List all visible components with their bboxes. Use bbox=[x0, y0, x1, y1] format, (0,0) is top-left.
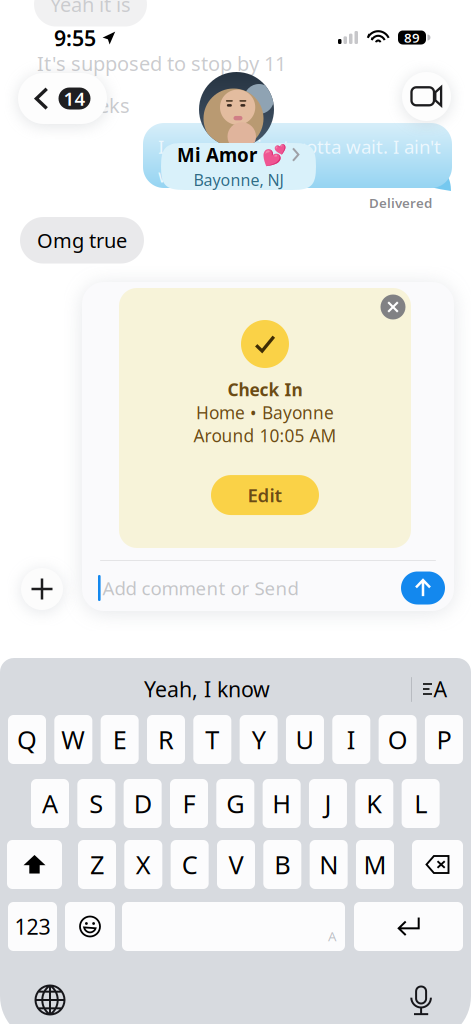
button[interactable]: Y bbox=[240, 715, 278, 764]
staticText: Bayonne, NJ bbox=[193, 169, 283, 190]
staticText: E bbox=[113, 723, 127, 756]
button[interactable]: O bbox=[379, 715, 417, 764]
staticText: R bbox=[158, 723, 174, 756]
staticText: 9:55 bbox=[54, 24, 96, 52]
staticText: K bbox=[366, 787, 382, 820]
staticText: H bbox=[272, 787, 291, 820]
button[interactable]: V bbox=[217, 840, 255, 889]
staticText: O bbox=[388, 723, 408, 756]
staticText: A bbox=[328, 927, 337, 945]
button[interactable]: X bbox=[124, 840, 162, 889]
staticText: 14 bbox=[63, 86, 85, 111]
staticText: Add comment or Send bbox=[103, 576, 299, 600]
staticText: Omg true bbox=[37, 227, 127, 254]
button[interactable]: 123 bbox=[8, 902, 57, 951]
staticText: Y bbox=[252, 723, 266, 756]
staticText: S bbox=[89, 787, 103, 820]
button[interactable]: Delete bbox=[412, 840, 463, 889]
staticText: B bbox=[274, 848, 290, 881]
button[interactable]: Shift bbox=[7, 840, 62, 889]
staticText: T bbox=[205, 723, 219, 756]
button[interactable]: D bbox=[124, 779, 162, 828]
staticText: Home • Bayonne bbox=[196, 401, 334, 424]
staticText: J bbox=[324, 787, 331, 820]
staticText: Q bbox=[17, 723, 37, 756]
button[interactable]: Emoji bbox=[65, 902, 115, 951]
staticText: U bbox=[295, 723, 314, 756]
staticText: N bbox=[319, 848, 338, 881]
button[interactable]: S bbox=[77, 779, 115, 828]
button[interactable]: Dictation bbox=[397, 976, 445, 1024]
button[interactable]: Yeah, I know bbox=[97, 669, 317, 709]
button[interactable]: M bbox=[356, 840, 394, 889]
button[interactable]: Close bbox=[373, 287, 413, 327]
staticText: Yeah, I know bbox=[144, 675, 270, 703]
button[interactable]: R bbox=[147, 715, 185, 764]
button[interactable]: P bbox=[425, 715, 463, 764]
button[interactable]: Back bbox=[18, 73, 107, 124]
button[interactable]: Next keyboard bbox=[26, 976, 74, 1024]
staticText: I bbox=[347, 723, 356, 756]
button[interactable]: H bbox=[263, 779, 301, 828]
button[interactable]: Return bbox=[354, 902, 463, 951]
button[interactable]: Mi Amor contact details bbox=[161, 143, 316, 190]
staticText: 123 bbox=[14, 912, 50, 941]
button[interactable]: Send bbox=[399, 567, 447, 609]
staticText: Mi Amor bbox=[177, 142, 257, 167]
staticText: L bbox=[414, 787, 427, 820]
button[interactable]: A bbox=[31, 779, 69, 828]
button[interactable]: Text formatting bbox=[412, 669, 458, 709]
button[interactable]: J bbox=[309, 779, 347, 828]
button[interactable]: C bbox=[171, 840, 209, 889]
staticText: P bbox=[436, 723, 451, 756]
staticText: worried about us bbox=[158, 163, 309, 188]
button[interactable]: F bbox=[170, 779, 208, 828]
staticText: Edit bbox=[247, 483, 282, 507]
button[interactable]: E bbox=[101, 715, 139, 764]
staticText: It's supposed to stop by 11 bbox=[37, 50, 286, 77]
staticText: 💕 bbox=[262, 143, 287, 166]
staticText: Yeah it is bbox=[50, 0, 131, 18]
staticText: A bbox=[42, 787, 58, 820]
button[interactable]: T bbox=[193, 715, 231, 764]
button[interactable]: G bbox=[216, 779, 254, 828]
button[interactable]: Add attachment bbox=[21, 568, 63, 610]
button[interactable]: K bbox=[355, 779, 393, 828]
staticText: Around 10:05 AM bbox=[193, 424, 336, 447]
button[interactable]: Q bbox=[8, 715, 46, 764]
button[interactable]: FaceTime bbox=[402, 72, 451, 121]
staticText: A bbox=[433, 675, 447, 703]
button[interactable]: N bbox=[310, 840, 348, 889]
button[interactable]: I bbox=[332, 715, 370, 764]
staticText: F bbox=[182, 787, 195, 820]
staticText: D bbox=[134, 787, 152, 820]
staticText: Check In bbox=[227, 378, 302, 401]
staticText: a weeks bbox=[55, 92, 130, 119]
staticText: X bbox=[136, 848, 151, 881]
staticText: M bbox=[363, 848, 386, 881]
button[interactable]: Edit bbox=[211, 475, 319, 515]
staticText: Delivered bbox=[369, 194, 432, 212]
staticText: C bbox=[182, 848, 198, 881]
button[interactable]: L bbox=[402, 779, 440, 828]
staticText: 89 bbox=[404, 29, 420, 46]
staticText: G bbox=[226, 787, 244, 820]
button[interactable]: Z bbox=[78, 840, 116, 889]
button[interactable]: W bbox=[54, 715, 92, 764]
staticText: V bbox=[228, 848, 243, 881]
button[interactable]: U bbox=[286, 715, 324, 764]
staticText: W bbox=[61, 723, 85, 756]
button[interactable]: B bbox=[263, 840, 301, 889]
staticText: I guess we just gotta wait. I ain't bbox=[158, 134, 441, 159]
staticText: Z bbox=[90, 848, 104, 881]
